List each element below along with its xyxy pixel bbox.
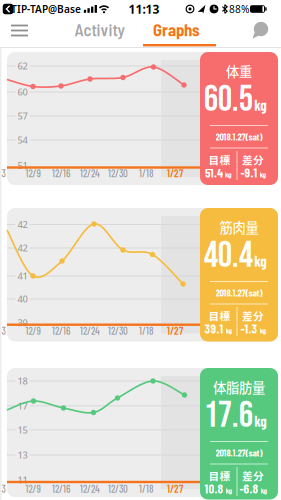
staticText: 差分 <box>242 152 264 167</box>
staticText: 12/9 <box>25 167 40 179</box>
button[interactable]: 62 <box>7 52 278 185</box>
staticText: 42 <box>17 242 27 254</box>
staticText: 1/27 <box>167 482 183 495</box>
staticText: 54 <box>17 134 27 146</box>
staticText: -9.1 <box>240 165 257 180</box>
staticText: 13 <box>17 449 27 461</box>
staticText: 12/24 <box>80 167 100 179</box>
staticText: 40 <box>17 293 27 305</box>
staticText: 39.1 <box>204 321 223 336</box>
button[interactable]: 42 <box>7 208 278 341</box>
staticText: 1/27 <box>167 324 183 337</box>
staticText: 筋肉量 <box>219 217 258 237</box>
staticText: kg <box>259 170 266 179</box>
button[interactable] <box>247 20 275 42</box>
staticText: 体重 <box>226 61 252 81</box>
staticText: 12/16 <box>52 482 70 495</box>
staticText: kg <box>254 252 266 270</box>
staticText: 12/30 <box>108 167 128 179</box>
button[interactable]: Graphs <box>136 16 216 42</box>
staticText: 11:13 <box>128 1 159 17</box>
staticText: 目標 <box>208 308 230 323</box>
staticText: kg <box>254 412 266 430</box>
staticText: kg <box>259 326 266 335</box>
staticText: 2018.1.27(sat) <box>215 131 262 142</box>
staticText: 18 <box>17 375 27 387</box>
staticText: 2018.1.27(sat) <box>215 287 262 298</box>
staticText: 17.6 <box>204 394 253 438</box>
staticText: kg <box>225 326 232 335</box>
staticText: -6.8 <box>239 481 258 496</box>
staticText: 12/9 <box>25 324 40 337</box>
staticText: 62 <box>17 60 27 72</box>
staticText: 目標 <box>208 152 230 167</box>
staticText: 42 <box>17 218 27 231</box>
staticText: 17 <box>17 400 27 412</box>
staticText: 12/16 <box>52 167 70 179</box>
staticText: -1.3 <box>240 321 257 336</box>
button[interactable]: 18 <box>7 368 278 499</box>
staticText: kg <box>225 486 232 495</box>
staticText: 12/30 <box>108 482 128 495</box>
staticText: 15 <box>17 424 27 436</box>
staticText: 11 <box>17 474 27 486</box>
staticText: 10.8 <box>204 481 223 496</box>
button[interactable]: Activity <box>59 16 139 42</box>
staticText: 60.5 <box>204 78 253 122</box>
staticText: 60 <box>17 86 27 98</box>
staticText: 39 <box>17 316 27 329</box>
staticText: 1/27 <box>167 167 183 179</box>
staticText: 1/18 <box>139 324 154 337</box>
staticText: Graphs <box>153 19 200 39</box>
staticText: 3 <box>1 324 5 337</box>
staticText: 1/18 <box>139 482 154 495</box>
staticText: 12/9 <box>25 482 40 495</box>
staticText: 51 <box>17 159 27 172</box>
staticText: 差分 <box>242 468 264 483</box>
staticText: 41 <box>17 270 27 282</box>
staticText: 2018.1.27(sat) <box>215 447 262 458</box>
staticText: 目標 <box>208 468 230 483</box>
staticText: 88% <box>229 2 249 16</box>
staticText: 12/16 <box>52 324 70 337</box>
staticText: 51.4 <box>205 165 223 180</box>
staticText: 差分 <box>242 308 264 323</box>
staticText: 40.4 <box>204 234 253 278</box>
button[interactable] <box>5 18 33 42</box>
staticText: 3 <box>1 167 5 179</box>
staticText: 体脂肪量 <box>213 377 265 397</box>
staticText: 12/24 <box>80 482 100 495</box>
staticText: TIP-TAP@Base <box>11 2 81 16</box>
staticText: 12/30 <box>108 324 128 337</box>
staticText: 57 <box>17 110 27 122</box>
staticText: kg <box>225 170 232 179</box>
staticText: kg <box>260 486 267 495</box>
staticText: 12/24 <box>80 324 100 337</box>
staticText: Activity <box>74 19 124 39</box>
staticText: 1/18 <box>139 167 154 179</box>
staticText: 3 <box>1 482 5 495</box>
staticText: kg <box>254 96 266 114</box>
